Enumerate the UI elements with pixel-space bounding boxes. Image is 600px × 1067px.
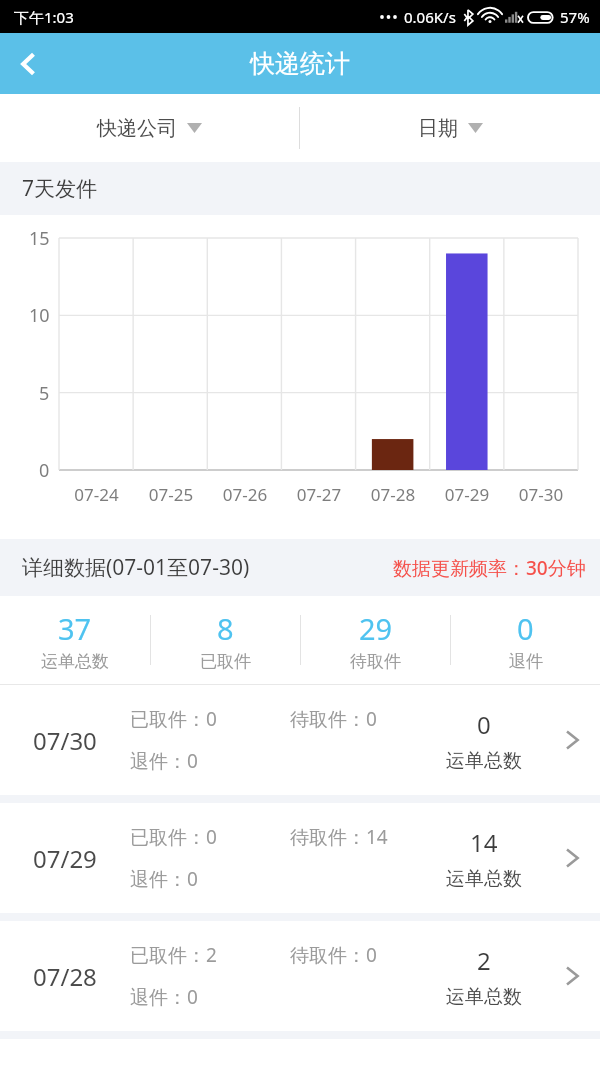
- staticText: 0: [39, 458, 50, 483]
- staticText: 29: [359, 609, 393, 648]
- staticText: 已取件：0: [130, 706, 290, 732]
- staticText: 10: [29, 303, 50, 328]
- staticText: 07-30: [504, 483, 578, 506]
- staticText: 5: [39, 381, 50, 406]
- staticText: 下午1:03: [14, 7, 74, 27]
- button[interactable]: 37: [0, 596, 150, 684]
- staticText: 待取件：0: [290, 706, 377, 732]
- staticText: 运单总数: [41, 651, 109, 672]
- button[interactable]: 快递公司: [0, 94, 299, 162]
- staticText: 已取件：0: [130, 824, 290, 850]
- button[interactable]: 29: [301, 596, 450, 684]
- staticText: 退件: [509, 651, 543, 672]
- staticText: 57%: [560, 7, 590, 27]
- staticText: 已取件：2: [130, 942, 290, 968]
- staticText: 运单总数: [446, 867, 522, 891]
- staticText: 07/29: [33, 842, 97, 875]
- staticText: 运单总数: [446, 985, 522, 1009]
- staticText: 退件：0: [130, 748, 198, 774]
- staticText: 07-28: [356, 483, 430, 506]
- button[interactable]: 07/28: [0, 921, 600, 1031]
- staticText: 日期: [418, 116, 458, 141]
- staticText: 快递统计: [250, 48, 350, 79]
- staticText: 07-29: [430, 483, 504, 506]
- staticText: 0: [477, 708, 491, 741]
- staticText: 0: [517, 609, 534, 648]
- staticText: 07-25: [134, 483, 208, 506]
- staticText: 37: [58, 609, 92, 648]
- staticText: 退件：0: [130, 866, 198, 892]
- staticText: 待取件：14: [290, 824, 388, 850]
- staticText: 0.06K/s: [404, 7, 456, 27]
- staticText: 已取件: [200, 651, 251, 672]
- staticText: 07-27: [282, 483, 356, 506]
- staticText: 运单总数: [446, 749, 522, 773]
- staticText: 7天发件: [22, 174, 98, 203]
- button[interactable]: 8: [151, 596, 300, 684]
- button[interactable]: 日期: [300, 94, 600, 162]
- staticText: 数据更新频率：30分钟: [393, 555, 586, 581]
- staticText: 详细数据(07-01至07-30): [22, 553, 250, 582]
- staticText: 退件：0: [130, 984, 198, 1010]
- button[interactable]: Back: [0, 36, 56, 92]
- staticText: 2: [477, 944, 491, 977]
- staticText: 07/28: [33, 960, 97, 993]
- staticText: 待取件: [350, 651, 401, 672]
- button[interactable]: 07/30: [0, 685, 600, 795]
- button[interactable]: 0: [451, 596, 600, 684]
- staticText: 14: [470, 826, 498, 859]
- staticText: 待取件：0: [290, 942, 377, 968]
- staticText: 8: [217, 609, 234, 648]
- staticText: 07-24: [59, 483, 134, 506]
- button[interactable]: 07/29: [0, 803, 600, 913]
- staticText: 快递公司: [97, 116, 177, 141]
- staticText: 07-26: [208, 483, 282, 506]
- staticText: 15: [29, 226, 50, 251]
- staticText: 07/30: [33, 724, 97, 757]
